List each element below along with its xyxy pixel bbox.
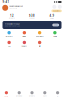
staticText: 4.9 [49,14,54,17]
staticText: Me [57,95,59,97]
staticText: Gifts [39,45,41,47]
button[interactable]: Me [51,91,64,97]
staticText: Shop [54,24,58,26]
button[interactable]: Pharmacy [32,31,47,37]
staticText: Grocery [6,36,13,37]
staticText: Retail [53,36,56,37]
staticText: Downtown Market [9,5,23,7]
staticText: 12 [10,14,14,17]
staticText: Orders [29,95,35,97]
button[interactable]: Retail [47,31,62,37]
staticText: Browse [16,95,22,97]
staticText: $38 [29,14,35,17]
staticText: Flowers [21,45,27,47]
button[interactable]: Free delivery today [2,21,61,29]
staticText: Rating [50,17,54,19]
button[interactable]: Search [52,5,56,9]
button[interactable]: 250 points [51,10,62,12]
button[interactable]: 4.9 [42,14,62,19]
button[interactable]: Dining [17,31,32,37]
button[interactable]: Home [0,91,13,97]
staticText: Orders [9,17,15,19]
staticText: Free delivery today [5,23,20,25]
button[interactable]: Flowers [17,41,32,47]
button[interactable]: Pets [1,41,17,47]
staticText: Pets [8,45,11,47]
button[interactable]: Browse [13,91,26,97]
staticText: Cart [43,95,46,97]
button[interactable]: Grocery [1,31,17,37]
button[interactable]: Gifts [32,41,47,47]
button[interactable]: Notifications [58,5,62,9]
button[interactable]: Cart [38,91,51,97]
button[interactable]: $38 [22,14,42,19]
staticText: Home [4,95,8,97]
button[interactable]: 12 [2,14,22,19]
staticText: Dining [22,36,26,37]
staticText: Saved [29,17,34,19]
staticText: 250 points [53,10,61,12]
staticText: Open · 20 min [9,7,17,9]
staticText: Pharmacy [36,36,44,37]
button[interactable]: Orders [26,91,38,97]
staticText: 9:41 [2,0,9,4]
staticText: on orders over $20 [5,25,20,27]
